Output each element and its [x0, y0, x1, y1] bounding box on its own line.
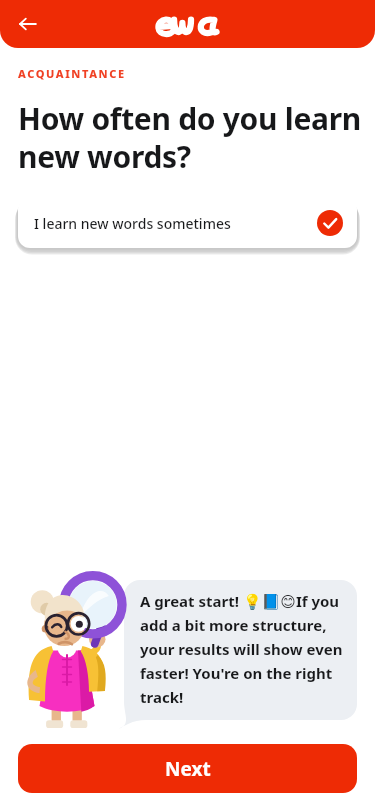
- staticText: How often do you learn new words?: [18, 98, 361, 177]
- staticText: ACQUAINTANCE: [18, 66, 126, 81]
- button[interactable]: Back: [12, 8, 44, 40]
- button[interactable]: Next: [18, 744, 357, 793]
- button[interactable]: I learn new words sometimes: [18, 198, 357, 248]
- staticText: A great start! 💡📘😊If you add a bit more …: [140, 591, 343, 707]
- staticText: Next: [165, 756, 211, 782]
- staticText: I learn new words sometimes: [34, 214, 317, 233]
